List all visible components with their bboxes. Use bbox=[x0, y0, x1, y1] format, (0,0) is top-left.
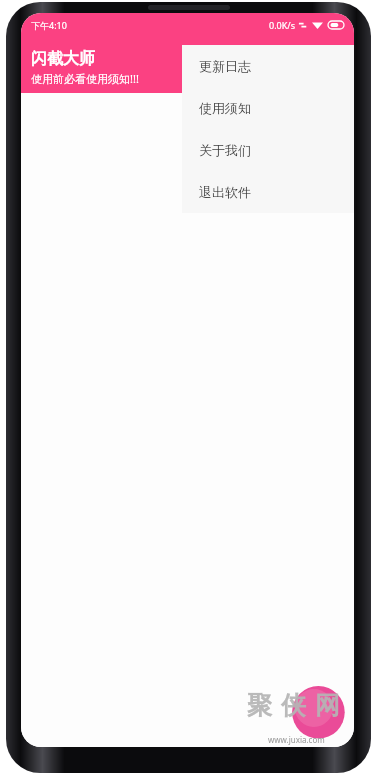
other: Wi-Fi bbox=[312, 21, 323, 29]
staticText: 更新日志 bbox=[199, 58, 251, 74]
staticText: 侠 bbox=[281, 690, 306, 721]
staticText: 聚 bbox=[247, 690, 272, 721]
button[interactable]: 使用须知 bbox=[182, 87, 354, 129]
staticText: www.juxia.com bbox=[268, 734, 325, 745]
staticText: 退出软件 bbox=[199, 184, 251, 200]
staticText: 关于我们 bbox=[199, 142, 251, 158]
button[interactable]: 更新日志 bbox=[182, 45, 354, 87]
button[interactable]: 退出软件 bbox=[182, 171, 354, 213]
other: Battery bbox=[328, 21, 344, 29]
staticText: 使用前必看使用须知!!! bbox=[31, 71, 139, 86]
other: Network activity bbox=[298, 21, 307, 30]
staticText: 0.0K/s bbox=[269, 19, 295, 31]
button[interactable]: 关于我们 bbox=[182, 129, 354, 171]
staticText: 闪截大师 bbox=[31, 49, 95, 69]
staticText: 网 bbox=[315, 690, 340, 721]
staticText: 使用须知 bbox=[199, 100, 251, 116]
staticText: 下午4:10 bbox=[31, 19, 67, 31]
